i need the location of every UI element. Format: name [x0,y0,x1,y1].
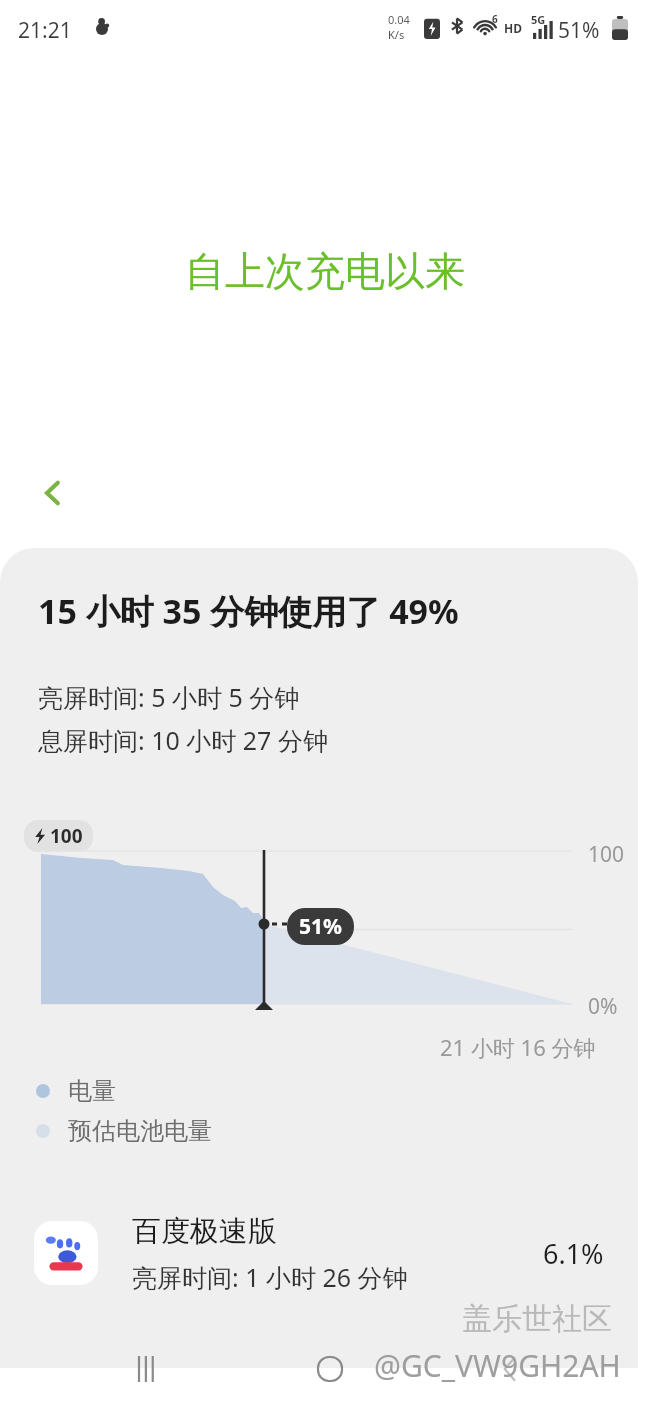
staticText: 盖乐世社区 [462,1300,612,1338]
staticText: 亮屏时间: 5 小时 5 分钟 [38,680,300,714]
staticText: 0.04 [388,12,410,27]
button[interactable]: 百度极速版 [0,1198,638,1308]
staticText: 51% [558,16,600,45]
staticText: @GC_VW9GH2AH [374,1345,621,1386]
staticText: 预估电池电量 [68,1116,212,1146]
staticText: 电量 [68,1076,116,1106]
staticText: 亮屏时间: 1 小时 26 分钟 [132,1260,408,1294]
staticText: 21 小时 16 分钟 [440,1032,596,1062]
button[interactable]: Recents [118,1344,178,1394]
staticText: 21:21 [18,16,72,45]
staticText: 自上次充电以来 [0,246,650,296]
staticText: K/s [388,27,405,42]
staticText: 6.1% [543,1235,604,1272]
staticText: 6 [492,12,498,26]
staticText: HD [504,20,522,36]
button[interactable]: Back [22,462,84,524]
staticText: 100 [50,823,83,849]
staticText: 100 [588,840,625,869]
button[interactable]: Home [300,1344,360,1394]
staticText: 5G [531,12,546,27]
staticText: 0% [588,992,618,1021]
staticText: 15 小时 35 分钟使用了 49% [38,588,459,634]
staticText: 百度极速版 [132,1213,277,1250]
staticText: 息屏时间: 10 小时 27 分钟 [38,723,328,757]
button[interactable]: Back [480,1344,540,1394]
staticText: 51% [299,912,342,941]
